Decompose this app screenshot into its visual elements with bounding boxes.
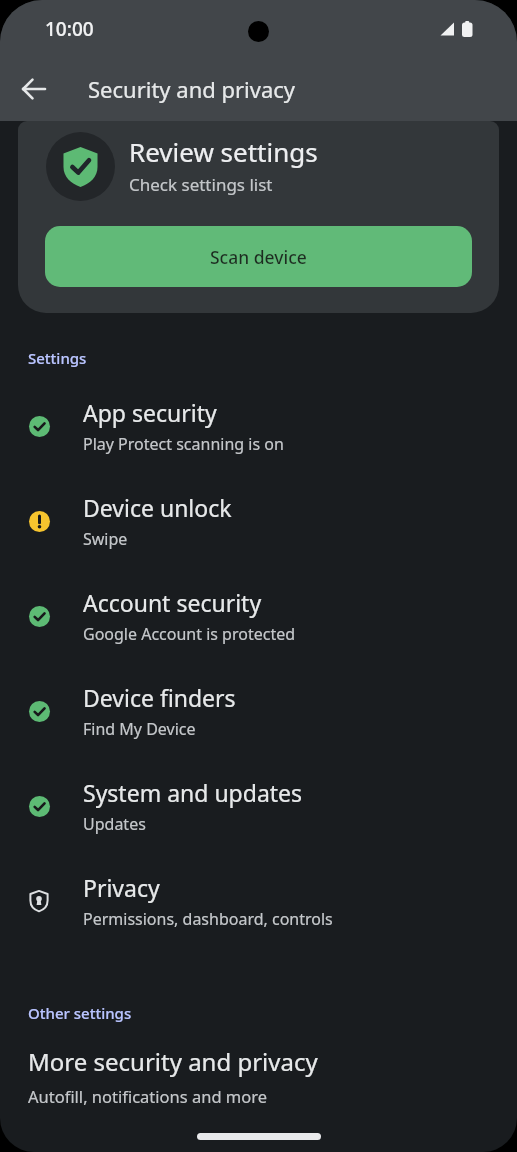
staticText: Autofill, notifications and more	[28, 1085, 268, 1107]
staticText: Device unlock	[83, 492, 232, 523]
staticText: System and updates	[83, 777, 303, 808]
staticText: Security and privacy	[88, 74, 296, 104]
staticText: Scan device	[210, 245, 307, 269]
staticText: Permissions, dashboard, controls	[83, 908, 333, 930]
button[interactable]: Account security	[0, 568, 517, 663]
staticText: Review settings	[129, 134, 318, 169]
staticText: Account security	[83, 587, 262, 618]
staticText: Play Protect scanning is on	[83, 433, 284, 455]
button[interactable]: Device finders	[0, 663, 517, 758]
staticText: Swipe	[83, 528, 128, 550]
button[interactable]: Device unlock	[0, 473, 517, 568]
button[interactable]	[14, 69, 54, 109]
button[interactable]: Privacy	[0, 853, 517, 948]
staticText: Check settings list	[129, 173, 273, 196]
staticText: 10:00	[45, 16, 94, 42]
staticText: Device finders	[83, 682, 236, 713]
staticText: Updates	[83, 813, 146, 835]
button[interactable]: System and updates	[0, 758, 517, 853]
staticText: Google Account is protected	[83, 623, 296, 645]
button[interactable]: More security and privacy	[0, 1045, 517, 1107]
staticText: Other settings	[28, 1003, 132, 1023]
staticText: Find My Device	[83, 718, 196, 740]
staticText: More security and privacy	[28, 1045, 318, 1078]
button[interactable]: App security	[0, 378, 517, 473]
button[interactable]: Scan device	[45, 226, 472, 287]
staticText: Privacy	[83, 872, 160, 903]
staticText: App security	[83, 397, 217, 428]
staticText: Settings	[28, 348, 87, 368]
